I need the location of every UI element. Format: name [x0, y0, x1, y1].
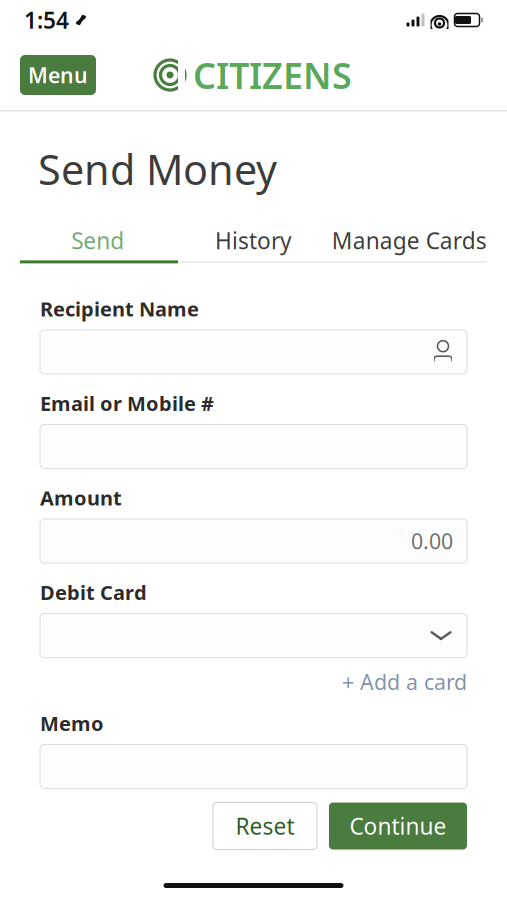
staticText: 1:54 [24, 5, 69, 35]
staticText: + Add a card [342, 668, 467, 696]
staticText: Email or Mobile # [40, 390, 214, 416]
button[interactable]: + Add a card [342, 668, 467, 696]
staticText: Manage Cards [332, 225, 487, 255]
staticText: 0.00 [411, 527, 453, 555]
staticText: Send [71, 225, 124, 255]
staticText: History [215, 225, 292, 255]
staticText: Amount [40, 484, 122, 511]
button[interactable]: Reset [213, 802, 317, 849]
staticText: Menu [28, 61, 88, 89]
staticText: Memo [40, 710, 104, 737]
staticText: CITIZENS [193, 51, 352, 99]
staticText: Reset [235, 811, 294, 841]
button[interactable]: Manage Cards [331, 220, 487, 260]
staticText: Recipient Name [40, 295, 199, 322]
staticText: Debit Card [40, 579, 147, 606]
button[interactable]: Continue [329, 802, 467, 849]
staticText: Send Money [38, 141, 277, 196]
button[interactable]: Send [20, 220, 176, 260]
staticText: Continue [349, 811, 446, 841]
button[interactable]: History [176, 220, 331, 260]
button[interactable]: Menu [20, 55, 96, 95]
